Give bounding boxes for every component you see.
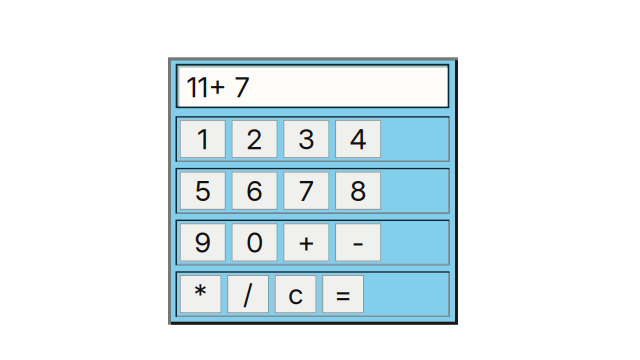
button[interactable]: 2 [231,120,278,158]
button[interactable]: + [283,223,329,262]
staticText: 3 [298,122,315,156]
button[interactable]: 9 [180,223,226,262]
button[interactable]: 4 [335,120,381,158]
staticText: 1 [197,122,208,156]
staticText: + [297,225,315,259]
button[interactable]: / [227,275,269,313]
button[interactable]: 0 [231,223,278,262]
button[interactable]: 6 [231,171,278,210]
staticText: 11+ 7 [186,70,249,104]
staticText: 7 [299,174,314,208]
button[interactable]: 5 [180,171,226,210]
staticText: 6 [246,174,263,208]
staticText: * [194,277,208,311]
button[interactable]: 7 [283,171,329,210]
staticText: 4 [349,122,367,156]
staticText: 5 [195,174,211,208]
button[interactable]: 3 [283,120,329,158]
staticText: / [243,277,253,311]
staticText: 8 [350,174,367,208]
staticText: = [334,277,352,311]
button[interactable]: * [180,275,222,313]
button[interactable]: 1 [180,120,226,158]
button[interactable]: c [275,275,317,313]
staticText: - [352,225,365,259]
staticText: 9 [194,225,211,259]
button[interactable]: 8 [335,171,381,210]
button[interactable]: - [335,223,381,262]
button[interactable]: = [322,275,364,313]
staticText: c [288,277,303,311]
staticText: 0 [246,225,263,259]
staticText: 2 [246,122,263,156]
